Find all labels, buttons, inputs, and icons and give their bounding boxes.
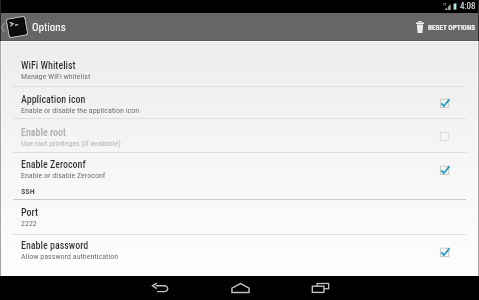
button[interactable]: Port (0, 200, 479, 234)
button[interactable]: Application icon (0, 87, 479, 118)
staticText: Enable root (21, 127, 67, 139)
staticText: Allow password authentication (21, 252, 119, 261)
button[interactable]: Reset options (408, 13, 479, 41)
other: Navigate up (1, 23, 5, 32)
staticText: Enable Zeroconf (21, 159, 86, 171)
button[interactable]: Recent apps (280, 276, 360, 300)
staticText: Enable password (21, 240, 89, 252)
staticText: Use root privileges (if available) (21, 139, 121, 148)
staticText: Options (32, 21, 66, 34)
staticText: SSH (21, 187, 35, 196)
staticText: 2222 (21, 219, 37, 228)
staticText: Port (21, 207, 39, 219)
staticText: Manage WiFi whitelist (21, 72, 91, 81)
button[interactable]: Toggle setting (439, 245, 453, 259)
button[interactable]: Enable root (0, 119, 479, 152)
staticText: 4:08 (460, 1, 476, 12)
button[interactable]: Enable Zeroconf (0, 153, 479, 186)
staticText: Enable or disable Zeroconf (21, 171, 106, 180)
staticText: Application icon (21, 94, 86, 106)
button[interactable]: WiFi Whitelist (0, 54, 479, 86)
other: Reset options (416, 21, 424, 33)
staticText: WiFi Whitelist (21, 60, 76, 72)
button[interactable]: Toggle setting (439, 129, 453, 143)
button[interactable]: Toggle setting (439, 96, 453, 110)
staticText: RESET OPTIONS (428, 23, 476, 31)
button[interactable]: Navigate up (0, 16, 70, 38)
button[interactable]: Home (200, 276, 280, 300)
button[interactable]: Toggle setting (439, 163, 453, 177)
staticText: Enable or disable the application icon (21, 106, 140, 115)
button[interactable]: Enable password (0, 235, 479, 269)
button[interactable]: Back (120, 276, 200, 300)
